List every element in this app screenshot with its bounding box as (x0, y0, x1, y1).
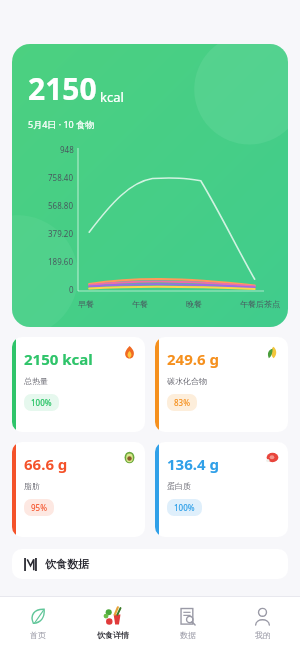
staticText: 758.40 (48, 172, 74, 183)
staticText: 2150 (28, 68, 97, 109)
staticText: 碳水化合物 (167, 376, 207, 386)
staticText: 我的 (255, 630, 271, 640)
staticText: 0 (69, 284, 74, 295)
staticText: 100% (174, 502, 195, 513)
staticText: 249.6 g (167, 349, 219, 369)
staticText: 首页 (30, 630, 46, 640)
staticText: 饮食数据 (45, 557, 89, 571)
button[interactable]: 2150 (12, 44, 288, 327)
button[interactable]: 66.6 g (12, 442, 145, 537)
staticText: 蛋白质 (167, 481, 191, 491)
staticText: 2150 kcal (24, 349, 93, 369)
button[interactable]: 249.6 g (155, 337, 288, 432)
button[interactable]: 我的 (225, 597, 300, 650)
staticText: 午餐后茶点 (240, 299, 280, 309)
staticText: 午餐 (132, 299, 148, 309)
button[interactable]: 饮食数据 (12, 549, 288, 579)
staticText: 100% (31, 397, 52, 408)
staticText: 66.6 g (24, 454, 68, 474)
button[interactable]: 数据 (150, 597, 225, 650)
staticText: 189.60 (48, 256, 74, 267)
staticText: 379.20 (48, 228, 74, 239)
button[interactable]: 首页 (0, 597, 75, 650)
staticText: 晚餐 (186, 299, 202, 309)
staticText: 568.80 (48, 200, 74, 211)
other: 饮食数据 (24, 558, 37, 571)
button[interactable]: 饮食详情 (75, 597, 150, 650)
staticText: 95% (31, 502, 47, 513)
staticText: 饮食详情 (97, 630, 129, 640)
staticText: 脂肪 (24, 481, 40, 491)
staticText: 总热量 (24, 376, 48, 386)
staticText: 83% (174, 397, 190, 408)
staticText: kcal (100, 88, 124, 106)
staticText: 数据 (180, 630, 196, 640)
button[interactable]: 2150 kcal (12, 337, 145, 432)
staticText: 136.4 g (167, 454, 219, 474)
button[interactable]: 136.4 g (155, 442, 288, 537)
staticText: 早餐 (78, 299, 94, 309)
staticText: 5月4日 · 10 食物 (28, 118, 95, 130)
staticText: 948 (60, 144, 74, 155)
